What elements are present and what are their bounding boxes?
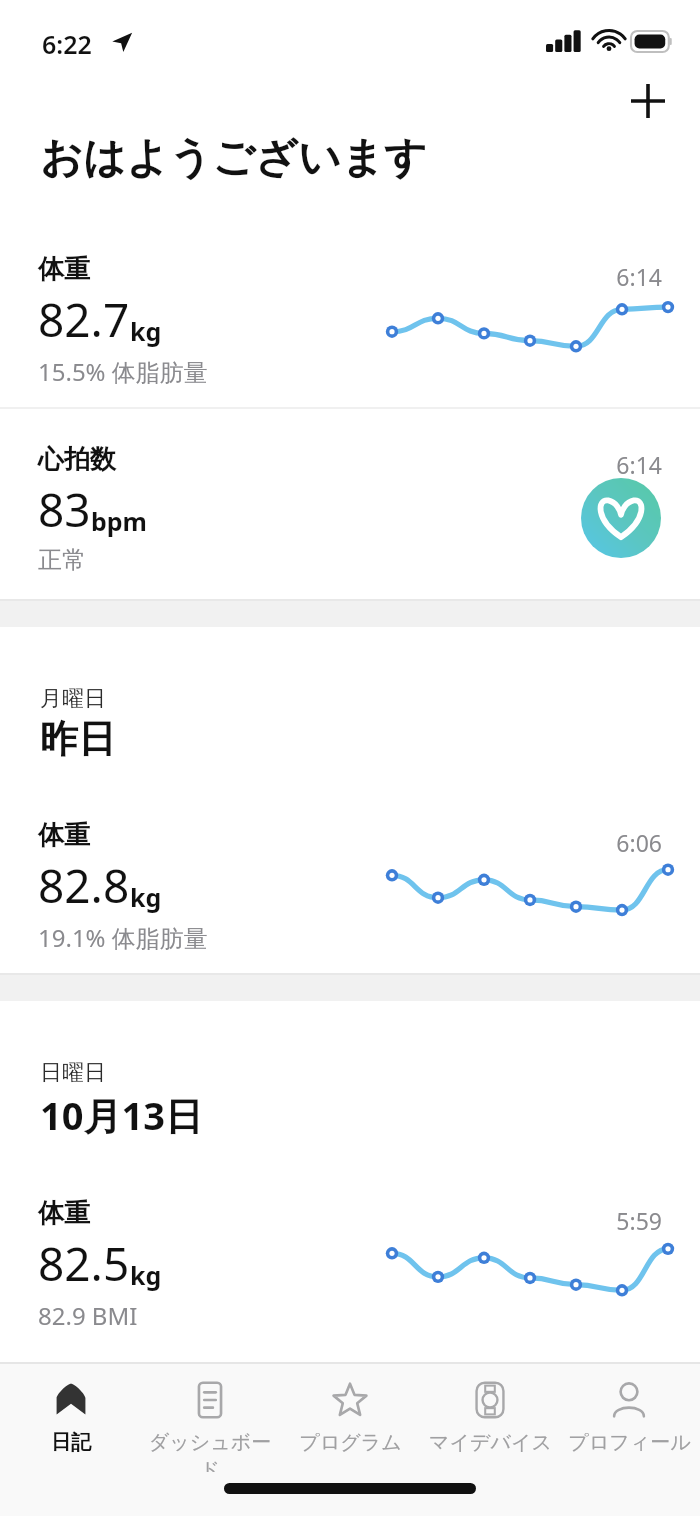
button[interactable]: 5:59 [0, 1183, 700, 1351]
staticText: 月曜日 [40, 685, 106, 713]
staticText: 83 [38, 478, 91, 541]
staticText: 82.5 [38, 1232, 130, 1295]
staticText: 6:06 [0, 827, 662, 858]
button[interactable]: Add entry [614, 72, 682, 130]
staticText: 昨日 [40, 715, 116, 763]
button[interactable]: プログラム [281, 1364, 419, 1455]
staticText: 体重 [38, 253, 90, 286]
button[interactable]: マイデバイス [421, 1364, 559, 1455]
button[interactable]: 6:06 [0, 805, 700, 973]
staticText: 6:22 [42, 27, 92, 61]
button[interactable]: 6:14 [0, 409, 700, 599]
button[interactable]: 6:14 [0, 239, 700, 407]
staticText: kg [130, 1258, 162, 1292]
staticText: 10月13日 [40, 1089, 203, 1141]
staticText: 19.1% 体脂肪量 [38, 921, 208, 954]
staticText: 正常 [38, 545, 86, 575]
staticText: 6:14 [0, 449, 662, 480]
staticText: 82.7 [38, 288, 130, 351]
staticText: kg [130, 314, 162, 348]
staticText: bpm [91, 504, 147, 538]
staticText: 82.9 BMI [38, 1299, 138, 1332]
staticText: おはようございます [40, 132, 427, 185]
button[interactable]: ダッシュボード [141, 1364, 279, 1472]
staticText: 82.8 [38, 854, 130, 917]
staticText: 体重 [38, 1197, 90, 1230]
staticText: マイデバイス [429, 1430, 552, 1455]
button[interactable]: プロフィール [560, 1364, 698, 1455]
staticText: 15.5% 体脂肪量 [38, 355, 208, 388]
staticText: ダッシュボード [141, 1430, 279, 1472]
staticText: 5:59 [0, 1205, 662, 1236]
staticText: 6:14 [0, 261, 662, 292]
staticText: プログラム [299, 1430, 402, 1455]
staticText: 日曜日 [40, 1059, 106, 1087]
staticText: 日記 [51, 1430, 91, 1455]
staticText: 心拍数 [38, 443, 116, 476]
staticText: プロフィール [568, 1430, 691, 1455]
staticText: kg [130, 880, 162, 914]
staticText: 体重 [38, 819, 90, 852]
button[interactable]: 日記 [2, 1364, 140, 1455]
